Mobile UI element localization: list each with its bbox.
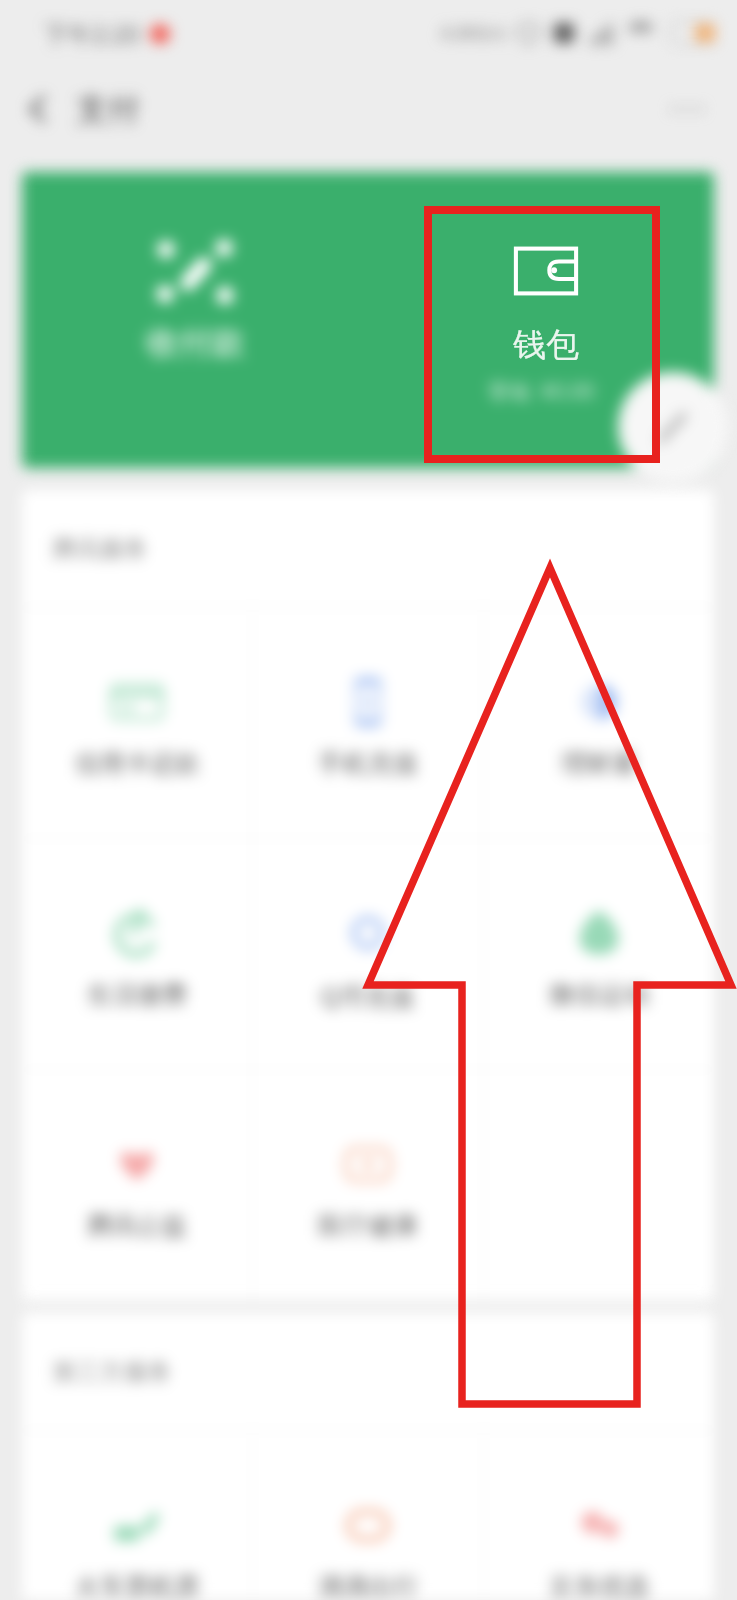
button[interactable]: Edit services <box>618 372 728 482</box>
staticText: 生活缴费 <box>87 979 187 1010</box>
button[interactable]: 理财通 <box>483 608 714 839</box>
staticText: 滴滴出行 <box>318 1571 418 1600</box>
staticText: 腾讯公益 <box>87 1210 187 1241</box>
button[interactable]: 收付款 <box>22 172 368 468</box>
staticText: 支付 <box>76 89 140 129</box>
button[interactable]: 钱包 <box>428 208 664 465</box>
staticText: 理财通 <box>561 748 636 779</box>
button[interactable] <box>483 1070 714 1301</box>
staticText: Q币充值 <box>320 979 415 1013</box>
button[interactable]: 腾讯公益 <box>22 1070 252 1301</box>
staticText: 4.8Kb/s <box>440 20 507 46</box>
staticText: 火车票机票 <box>75 1571 200 1600</box>
staticText: 信用卡还款 <box>75 748 200 779</box>
button[interactable]: 信用卡还款 <box>22 608 252 839</box>
button[interactable]: 零钱 ¥0.00 <box>368 172 714 468</box>
button[interactable]: Back <box>10 81 66 137</box>
staticText: 京东优选 <box>549 1571 649 1600</box>
button[interactable]: 微信运动 <box>483 839 714 1070</box>
button[interactable]: 手机充值 <box>252 608 483 839</box>
staticText: 腾讯服务 <box>52 534 148 564</box>
staticText: jingyan.baidu.com <box>532 1554 697 1580</box>
staticText: 收付款 <box>146 322 245 364</box>
button[interactable]: 火车票机票 <box>22 1431 252 1600</box>
button[interactable]: 医疗健康 <box>252 1070 483 1301</box>
staticText: 零钱 ¥0.00 <box>488 377 595 406</box>
staticText: 手机充值 <box>318 748 418 779</box>
staticText: 下午2:20 <box>44 17 140 50</box>
staticText: 微信运动 <box>549 979 649 1010</box>
staticText: 第三方服务 <box>52 1357 172 1387</box>
staticText: 钱包 <box>513 324 579 366</box>
staticText: Baidu 经验 <box>527 1508 701 1554</box>
button[interactable]: 京东优选 <box>483 1431 714 1600</box>
button[interactable]: Q币充值 <box>252 839 483 1070</box>
button[interactable]: 滴滴出行 <box>252 1431 483 1600</box>
staticText: 医疗健康 <box>318 1210 418 1241</box>
button[interactable]: 生活缴费 <box>22 839 252 1070</box>
